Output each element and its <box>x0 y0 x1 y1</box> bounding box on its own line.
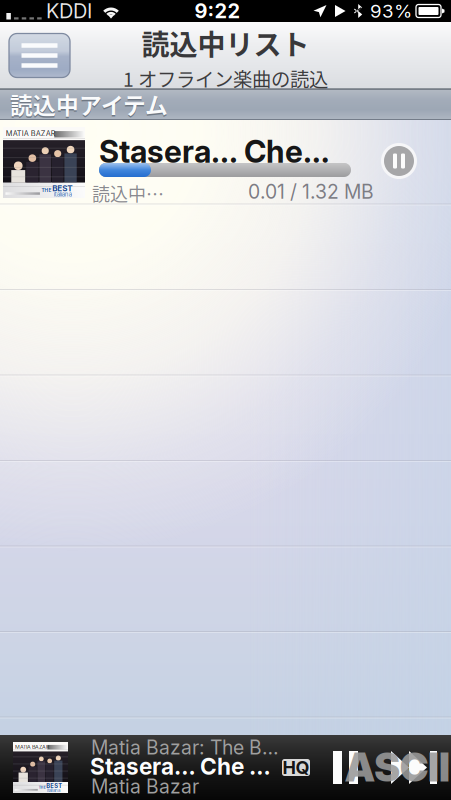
staticText: BEST <box>52 183 72 193</box>
staticText: MATIA BAZAR <box>15 743 49 750</box>
staticText: 読込中アイテム <box>10 89 168 122</box>
staticText: ASCII <box>345 744 450 791</box>
staticText: 93% <box>370 0 412 22</box>
staticText: 0.01 / 1.32 MB <box>248 180 374 203</box>
staticText: Stasera... Che… <box>99 133 330 170</box>
staticText: 9:22 <box>194 0 240 23</box>
staticText: italiana <box>47 788 60 793</box>
button[interactable]: Pause <box>333 751 358 784</box>
staticText: 読込中… <box>92 180 164 206</box>
staticText: 1 オフライン楽曲の読込 <box>123 64 328 92</box>
staticText: italiana <box>54 190 72 198</box>
staticText: Stasera… Che Se… <box>90 753 280 780</box>
staticText: Matia Bazar <box>91 775 199 798</box>
staticText: THE <box>41 187 51 193</box>
staticText: THE <box>39 785 46 789</box>
staticText: 読込中リスト <box>141 23 309 63</box>
button[interactable]: Next track <box>391 751 437 784</box>
button[interactable]: Menu <box>9 33 70 77</box>
button[interactable]: Pause download <box>380 142 418 180</box>
staticText: KDDI <box>46 0 92 23</box>
staticText: 読込中アイテム <box>10 88 168 120</box>
staticText: Matia Bazar: The Bes… <box>91 736 281 759</box>
staticText: HQ <box>282 757 309 778</box>
staticText: MATIA BAZAR <box>6 129 56 138</box>
staticText: BEST <box>46 782 62 789</box>
